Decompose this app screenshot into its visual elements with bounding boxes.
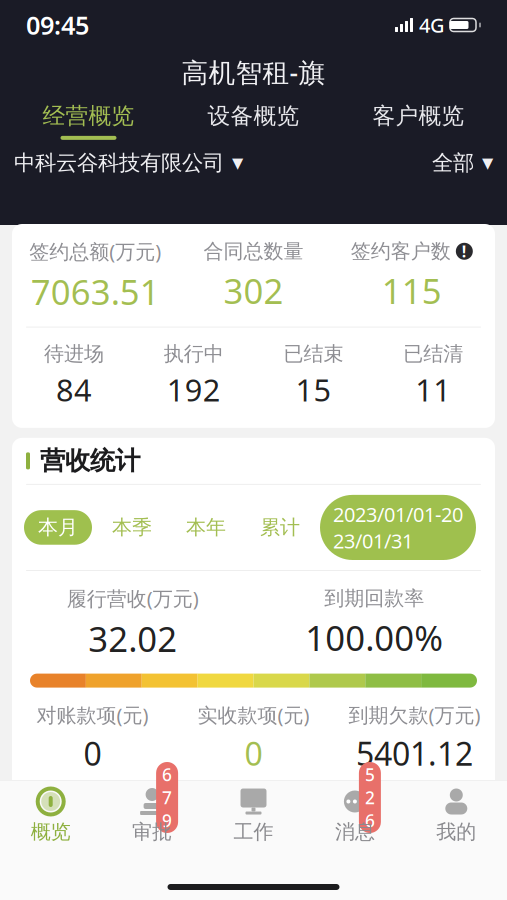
staticText: !	[462, 241, 467, 262]
button[interactable]: 设备概览	[171, 98, 336, 144]
button[interactable]: 我的	[406, 780, 507, 848]
staticText: 526	[365, 763, 375, 832]
button[interactable]: 客户概览	[336, 98, 501, 144]
staticText: 经营风险	[40, 810, 140, 841]
button[interactable]: 2023/01/01-2023/01/31	[320, 495, 476, 560]
staticText: 设备概览	[207, 102, 299, 130]
staticText: ▼	[482, 154, 493, 171]
staticText: 679	[162, 763, 172, 832]
staticText: 消息	[335, 819, 375, 844]
staticText: 5401.12	[356, 732, 473, 775]
staticText: 4G	[419, 12, 445, 38]
staticText: 高机智租-旗	[181, 54, 325, 90]
staticText: 履行营收(万元)	[67, 585, 199, 612]
staticText: 经营概览	[42, 102, 134, 130]
button[interactable]: 累计	[246, 510, 314, 545]
button[interactable]: 本年	[172, 510, 240, 545]
button[interactable]: 本月	[24, 510, 92, 545]
staticText: 100.00%	[305, 615, 443, 661]
staticText: 全部	[432, 150, 474, 176]
staticText: 2023/01/01-2023/01/31	[333, 501, 463, 554]
staticText: 7063.51	[31, 269, 160, 315]
staticText: 到期欠款(万元)	[348, 702, 480, 728]
staticText: 待进场	[44, 342, 104, 366]
staticText: 0	[83, 732, 101, 775]
staticText: 已结清	[403, 342, 463, 366]
button[interactable]: 526	[304, 780, 406, 848]
button[interactable]: 经营概览	[6, 98, 171, 144]
staticText: 工作	[233, 819, 273, 844]
button[interactable]: 概览	[0, 780, 101, 848]
staticText: 09:45	[26, 8, 89, 42]
staticText: 115	[382, 268, 442, 314]
staticText: 签约客户数	[351, 239, 451, 264]
staticText: 32.02	[88, 616, 177, 662]
staticText: 客户概览	[372, 102, 464, 130]
button[interactable]: 本季	[98, 510, 166, 545]
staticText: 到期回款率	[324, 586, 424, 611]
staticText: 本季	[112, 515, 152, 540]
staticText: 本年	[186, 515, 226, 540]
button[interactable]: 679	[101, 780, 203, 848]
staticText: ▼	[232, 154, 243, 171]
staticText: 签约总额(万元)	[29, 238, 161, 265]
staticText: 302	[223, 268, 283, 314]
staticText: 实收款项(元)	[197, 702, 309, 728]
staticText: 合同总数量	[203, 239, 303, 264]
button[interactable]: 工作	[203, 780, 304, 848]
staticText: 审批	[132, 819, 172, 844]
button[interactable]: 中科云谷科技有限公司	[14, 150, 243, 176]
staticText: 84	[56, 369, 92, 410]
staticText: 概览	[31, 819, 71, 844]
staticText: 已结束	[283, 342, 343, 366]
staticText: 本月	[38, 515, 78, 540]
staticText: 15	[295, 369, 331, 410]
staticText: 我的	[436, 819, 476, 844]
staticText: 0	[244, 732, 262, 775]
staticText: 192	[167, 369, 221, 410]
staticText: 执行中	[164, 342, 224, 366]
staticText: 累计	[260, 515, 300, 540]
staticText: 中科云谷科技有限公司	[14, 150, 224, 176]
staticText: 对账款项(元)	[36, 702, 148, 728]
staticText: 营收统计	[40, 445, 140, 476]
button[interactable]: 全部	[432, 150, 493, 176]
staticText: 11	[415, 369, 451, 410]
